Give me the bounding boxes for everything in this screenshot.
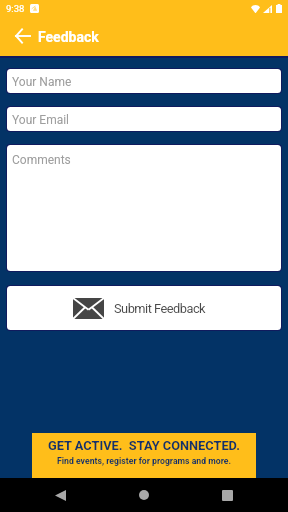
button[interactable]: GET ACTIVE. STAY CONNECTED. bbox=[32, 433, 256, 478]
button[interactable]: Back bbox=[11, 24, 34, 47]
button[interactable]: Recent apps bbox=[210, 478, 244, 512]
staticText: Feedback bbox=[38, 29, 99, 45]
button[interactable]: Back bbox=[43, 478, 77, 512]
button[interactable]: Home bbox=[127, 478, 161, 512]
staticText: Find events, register for programs and m… bbox=[57, 456, 232, 466]
staticText: Submit Feedback bbox=[114, 301, 206, 316]
staticText: GET ACTIVE. STAY CONNECTED. bbox=[48, 438, 240, 453]
staticText: Your Name bbox=[12, 75, 72, 89]
button[interactable]: Your Name bbox=[7, 69, 281, 93]
button[interactable]: Submit Feedback bbox=[7, 286, 281, 330]
staticText: Comments bbox=[12, 153, 71, 167]
button[interactable]: Your Email bbox=[7, 107, 281, 131]
button[interactable]: Comments bbox=[7, 145, 281, 271]
staticText: Your Email bbox=[12, 113, 70, 127]
staticText: 9:38 bbox=[6, 3, 25, 14]
